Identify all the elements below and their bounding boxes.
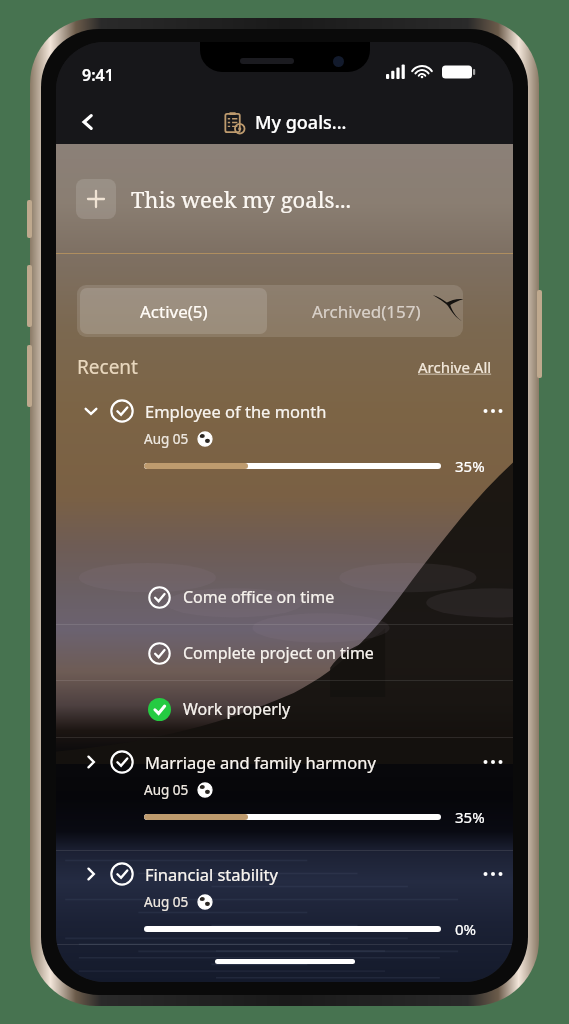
button[interactable]: Collapse xyxy=(78,398,104,424)
staticText: Archive All xyxy=(418,357,492,377)
staticText: Marriage and family harmony xyxy=(145,751,376,773)
button[interactable]: Expand xyxy=(56,741,513,831)
staticText: Recent xyxy=(77,354,138,380)
staticText: My goals... xyxy=(255,110,347,135)
button[interactable]: Work properly xyxy=(56,682,513,736)
staticText: This week my goals... xyxy=(131,184,351,214)
button[interactable]: Complete project on time xyxy=(56,626,513,680)
staticText: Aug 05 xyxy=(144,430,189,448)
button[interactable]: More options xyxy=(473,394,513,428)
button[interactable]: Archived(157) xyxy=(270,285,463,337)
staticText: Come office on time xyxy=(183,586,335,608)
staticText: Aug 05 xyxy=(144,893,189,911)
staticText: Active(5) xyxy=(140,300,208,323)
button[interactable]: Add goal xyxy=(76,179,116,219)
staticText: 0% xyxy=(455,919,477,939)
button[interactable]: Add goal xyxy=(76,144,513,254)
button[interactable]: Collapse xyxy=(56,390,513,480)
staticText: Employee of the month xyxy=(145,400,327,422)
button[interactable]: Back xyxy=(66,100,110,144)
button[interactable]: Expand xyxy=(78,861,104,887)
button[interactable]: More options xyxy=(473,857,513,891)
staticText: Complete project on time xyxy=(183,642,374,664)
button[interactable]: Archive All xyxy=(418,357,492,377)
button[interactable]: More options xyxy=(473,745,513,779)
button[interactable]: Expand xyxy=(56,853,513,943)
staticText: Work properly xyxy=(183,698,291,720)
button[interactable]: Come office on time xyxy=(56,570,513,624)
button[interactable]: Active(5) xyxy=(80,288,267,334)
staticText: 35% xyxy=(455,807,485,827)
button[interactable]: Expand xyxy=(78,749,104,775)
staticText: 35% xyxy=(455,456,485,476)
staticText: Aug 05 xyxy=(144,781,189,799)
staticText: Financial stability xyxy=(145,863,278,885)
staticText: 9:41 xyxy=(82,64,114,86)
staticText: Archived(157) xyxy=(312,300,421,323)
